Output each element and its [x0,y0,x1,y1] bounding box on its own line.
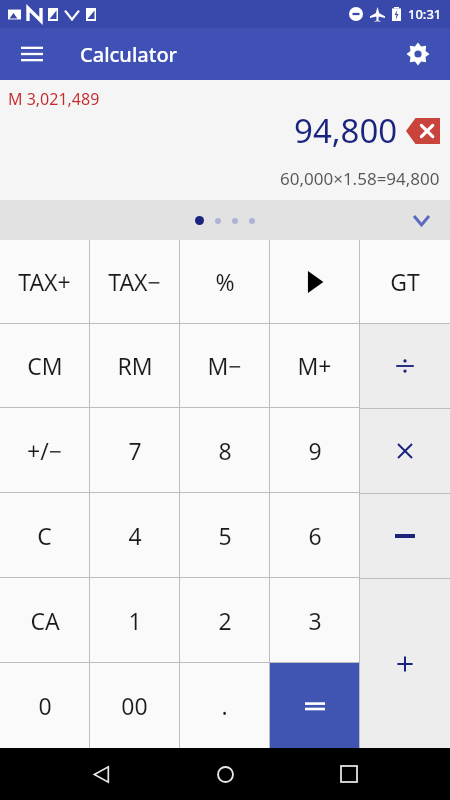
button[interactable]: TAX− [90,240,179,323]
button[interactable] [360,324,450,408]
button[interactable]: . [180,663,269,748]
staticText: TAX+ [18,266,71,297]
button[interactable]: 7 [90,408,179,492]
staticText: C [37,520,52,551]
button[interactable]: 0 [0,663,89,748]
staticText: 3 [308,605,322,636]
button[interactable]: 2 [180,578,269,662]
button[interactable]: 5 [180,493,269,577]
staticText: 7 [128,435,142,466]
button[interactable] [360,494,450,578]
button[interactable]: Back [78,751,124,797]
button[interactable]: Backspace [406,118,440,144]
staticText: M− [207,350,242,381]
staticText: 4 [128,520,142,551]
staticText: CM [27,350,63,381]
button[interactable]: 3 [270,578,359,662]
button[interactable]: 4 [90,493,179,577]
button[interactable]: 1 [90,578,179,662]
button[interactable]: RM [90,324,179,407]
button[interactable]: GT [360,240,450,323]
staticText: % [215,266,235,297]
button[interactable]: 6 [270,493,359,577]
staticText: 94,800 [294,108,398,153]
button[interactable] [360,409,450,493]
button[interactable]: Recents [326,751,372,797]
button[interactable]: TAX+ [0,240,89,323]
staticText: 1 [128,605,142,636]
staticText: GT [390,266,420,297]
button[interactable]: Expand [406,205,436,235]
staticText: 8 [218,435,232,466]
staticText: TAX− [108,266,161,297]
staticText: M+ [297,350,332,381]
button[interactable]: 00 [90,663,179,748]
button[interactable] [270,240,359,323]
button[interactable]: C [0,493,89,577]
staticText: 9 [308,435,322,466]
button[interactable]: CA [0,578,89,662]
button[interactable] [360,579,450,748]
staticText: M 3,021,489 [8,88,100,110]
staticText: CA [30,605,60,636]
button[interactable]: CM [0,324,89,407]
staticText: 0 [38,690,52,721]
staticText: 5 [218,520,232,551]
button[interactable]: 9 [270,408,359,492]
staticText: 6 [308,520,322,551]
button[interactable]: M+ [270,324,359,407]
button[interactable]: 8 [180,408,269,492]
button[interactable]: % [180,240,269,323]
button[interactable] [270,663,359,748]
button[interactable]: Settings [396,32,440,76]
button[interactable]: +/− [0,408,89,492]
button[interactable]: M− [180,324,269,407]
staticText: . [221,690,228,721]
staticText: 60,000×1.58=94,800 [280,167,440,190]
staticText: 2 [218,605,232,636]
button[interactable]: Home [202,751,248,797]
staticText: 00 [121,690,148,721]
staticText: +/− [27,435,62,466]
staticText: Calculator [80,41,178,68]
staticText: RM [117,350,153,381]
staticText: 10:31 [408,5,442,23]
button[interactable]: Menu [12,34,52,74]
